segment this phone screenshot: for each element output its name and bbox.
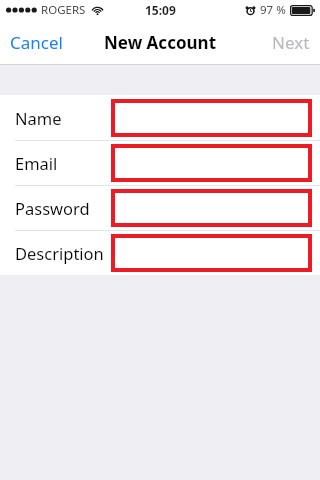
button[interactable]: Description: [0, 231, 320, 275]
staticText: Email: [15, 152, 58, 174]
staticText: Next: [272, 31, 310, 54]
staticText: New Account: [104, 31, 217, 54]
staticText: Description: [15, 242, 104, 264]
button[interactable]: Email: [0, 141, 320, 185]
button[interactable]: Next: [262, 20, 320, 64]
staticText: 15:09: [145, 2, 176, 18]
staticText: Cancel: [10, 31, 63, 54]
staticText: Password: [15, 197, 90, 219]
button[interactable]: Password: [0, 186, 320, 230]
staticText: 97 %: [260, 2, 286, 18]
staticText: ROGERS: [41, 2, 86, 18]
button[interactable]: Cancel: [0, 20, 73, 64]
staticText: Name: [15, 107, 62, 129]
button[interactable]: Name: [0, 95, 320, 140]
